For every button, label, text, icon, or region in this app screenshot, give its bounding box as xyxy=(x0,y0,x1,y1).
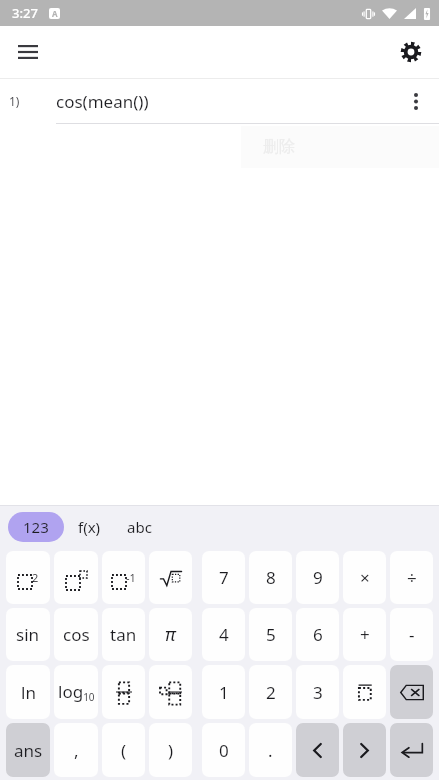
button[interactable]: Move left xyxy=(296,723,339,777)
button[interactable]: Inverse xyxy=(102,551,145,604)
staticText: A xyxy=(52,8,58,19)
staticText: 6 xyxy=(313,623,323,646)
staticText: 8 xyxy=(266,566,276,589)
button[interactable]: Mixed fraction xyxy=(149,665,192,719)
button[interactable]: . xyxy=(249,723,292,777)
button[interactable]: 123 xyxy=(8,512,64,542)
button[interactable]: ( xyxy=(102,723,145,777)
button[interactable]: 5 xyxy=(249,608,292,661)
staticText: 5 xyxy=(266,623,276,646)
staticText: cos xyxy=(63,623,90,646)
button[interactable]: ) xyxy=(149,723,192,777)
button[interactable]: abc xyxy=(115,512,164,542)
button[interactable]: 1 xyxy=(202,665,245,719)
staticText: π xyxy=(165,622,176,647)
button[interactable]: 7 xyxy=(202,551,245,604)
button[interactable]: Nth root xyxy=(343,665,386,719)
staticText: + xyxy=(360,623,370,646)
staticText: f(x) xyxy=(78,517,101,537)
staticText: tan xyxy=(110,623,137,646)
button[interactable]: tan xyxy=(102,608,145,661)
button[interactable]: 9 xyxy=(296,551,339,604)
button[interactable]: Pi xyxy=(149,608,192,661)
button[interactable]: 4 xyxy=(202,608,245,661)
button[interactable]: 3 xyxy=(296,665,339,719)
button[interactable]: cos(mean()) xyxy=(56,79,399,123)
button[interactable]: Enter xyxy=(390,723,433,777)
button[interactable]: 2 xyxy=(249,665,292,719)
staticText: 4 xyxy=(219,623,229,646)
staticText: -1 xyxy=(126,570,136,585)
staticText: sin xyxy=(16,623,40,646)
staticText: , xyxy=(74,739,79,762)
staticText: ans xyxy=(14,739,43,762)
staticText: ( xyxy=(121,739,127,762)
button[interactable]: Square xyxy=(6,551,50,604)
staticText: 3 xyxy=(313,681,323,704)
staticText: abc xyxy=(127,517,152,537)
staticText: 3:27 xyxy=(12,4,38,22)
staticText: 123 xyxy=(23,517,49,537)
staticText: cos(mean()) xyxy=(56,90,149,113)
button[interactable]: Log base 10 xyxy=(54,665,98,719)
button[interactable]: f(x) xyxy=(64,512,115,542)
staticText: - xyxy=(409,623,415,646)
staticText: ln xyxy=(21,681,36,704)
button[interactable]: ÷ xyxy=(390,551,433,604)
staticText: ÷ xyxy=(407,566,417,589)
button[interactable]: Square root xyxy=(149,551,192,604)
button[interactable]: ln xyxy=(6,665,50,719)
button[interactable]: ans xyxy=(6,723,50,777)
button[interactable]: Backspace xyxy=(390,665,433,719)
button[interactable]: 8 xyxy=(249,551,292,604)
staticText: 9 xyxy=(313,566,323,589)
staticText: 0 xyxy=(219,739,229,762)
button[interactable]: Menu xyxy=(6,30,50,74)
staticText: . xyxy=(268,739,273,762)
button[interactable]: 6 xyxy=(296,608,339,661)
staticText: 7 xyxy=(219,566,229,589)
button[interactable]: Power xyxy=(54,551,98,604)
staticText: 2 xyxy=(266,681,276,704)
button[interactable]: - xyxy=(390,608,433,661)
staticText: log10 xyxy=(58,680,95,704)
staticText: 1 xyxy=(219,681,229,704)
staticText: 1) xyxy=(9,93,20,109)
staticText: 2 xyxy=(32,570,39,585)
button[interactable]: × xyxy=(343,551,386,604)
button[interactable]: More options xyxy=(397,82,435,120)
button[interactable]: , xyxy=(54,723,98,777)
staticText: 删除 xyxy=(263,137,295,157)
staticText: ) xyxy=(168,739,174,762)
button[interactable]: sin xyxy=(6,608,50,661)
staticText: × xyxy=(360,566,370,589)
button[interactable]: Settings xyxy=(389,30,433,74)
button[interactable]: Fraction xyxy=(102,665,145,719)
button[interactable]: cos xyxy=(54,608,98,661)
button[interactable]: + xyxy=(343,608,386,661)
button[interactable]: Move right xyxy=(343,723,386,777)
button[interactable]: 0 xyxy=(202,723,245,777)
